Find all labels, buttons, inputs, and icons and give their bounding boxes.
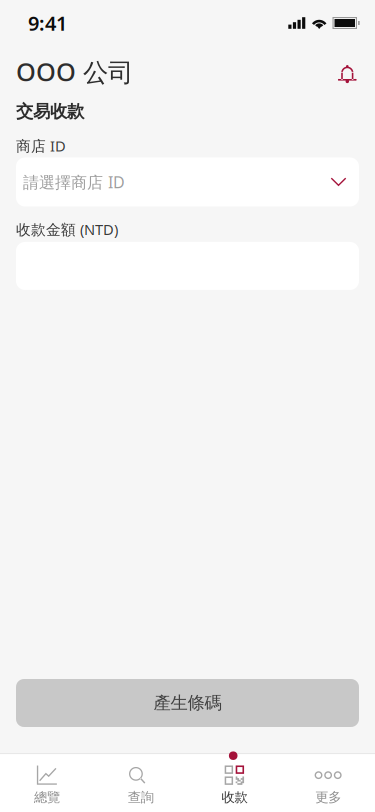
button[interactable]: 更多 [281, 754, 375, 812]
button[interactable]: 查詢 [94, 754, 188, 812]
staticText: 查詢 [128, 789, 154, 806]
button[interactable]: 收款 [187, 754, 281, 812]
staticText: 更多 [315, 789, 341, 806]
staticText: 交易收款 [16, 101, 84, 122]
button[interactable]: 通知 [331, 56, 362, 87]
staticText: 商店 ID [16, 136, 66, 155]
staticText: OOO 公司 [16, 55, 133, 88]
staticText: 9:41 [28, 10, 67, 36]
staticText: 收款金額 (NTD) [16, 219, 118, 239]
staticText: 收款 [221, 789, 247, 806]
staticText: 請選擇商店 ID [23, 171, 125, 193]
staticText: 總覽 [34, 789, 60, 806]
button[interactable]: 總覽 [0, 754, 94, 812]
button[interactable]: 產生條碼 [16, 679, 359, 727]
staticText: 產生條碼 [153, 692, 221, 714]
button[interactable]: 請選擇商店 ID [16, 157, 359, 206]
